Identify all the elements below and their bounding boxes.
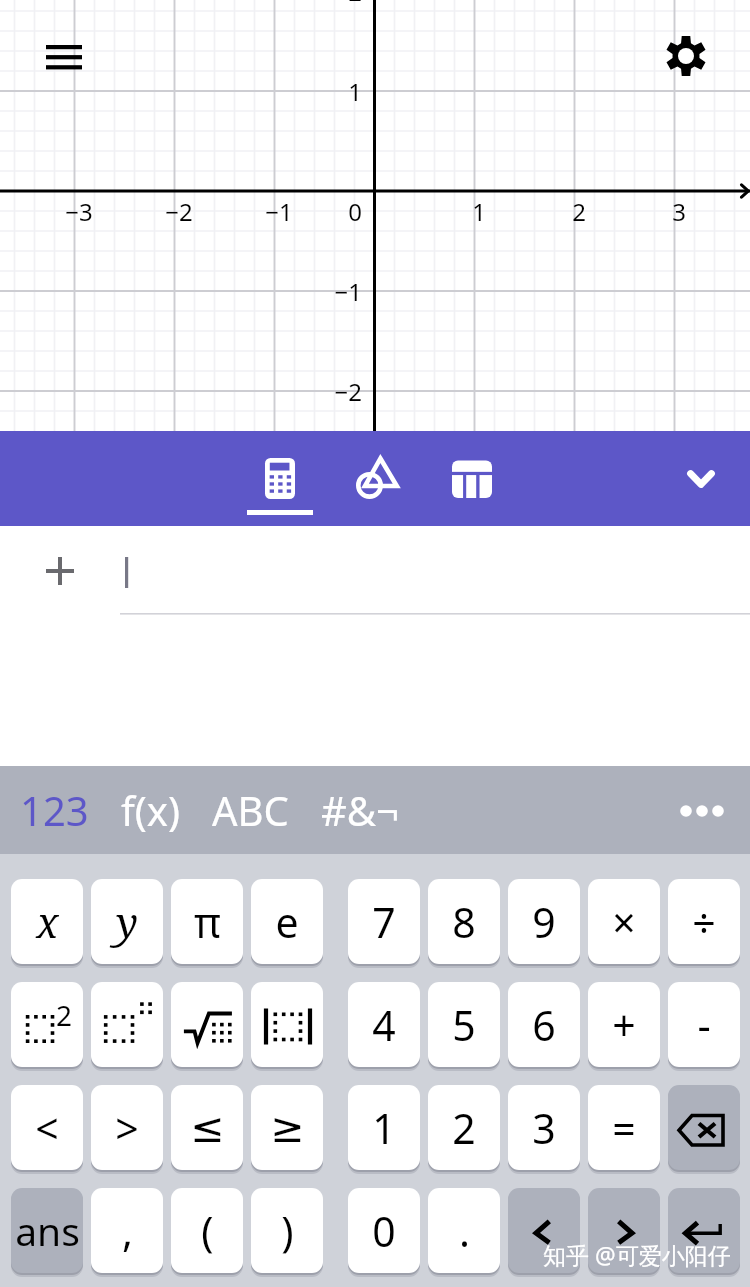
button[interactable]: Absolute value <box>251 982 323 1067</box>
staticText: = <box>612 1100 636 1156</box>
button[interactable]: 7 <box>348 879 420 964</box>
staticText: ( <box>201 1203 214 1259</box>
button[interactable]: Add expression <box>32 545 88 601</box>
button[interactable]: 4 <box>348 982 420 1067</box>
button[interactable]: f(x) <box>105 773 196 847</box>
button[interactable]: ≤ <box>171 1085 243 1170</box>
button[interactable]: Calculator <box>246 431 314 526</box>
button[interactable]: e <box>251 879 323 964</box>
staticText: −2 <box>129 195 229 228</box>
staticText: , <box>122 1203 133 1259</box>
button[interactable]: Move right <box>588 1188 660 1273</box>
button[interactable]: . <box>428 1188 500 1273</box>
button[interactable]: 8 <box>428 879 500 964</box>
button[interactable]: 1 <box>348 1085 420 1170</box>
button[interactable]: Settings <box>660 30 712 82</box>
staticText: 3 <box>532 1100 556 1156</box>
staticText: 2 <box>262 0 362 8</box>
button[interactable]: Square <box>11 982 83 1067</box>
staticText: #&¬ <box>321 783 399 837</box>
staticText: 5 <box>452 997 476 1053</box>
button[interactable]: 6 <box>508 982 580 1067</box>
button[interactable]: ) <box>251 1188 323 1273</box>
staticText: 1 <box>262 75 362 108</box>
staticText: ÷ <box>692 894 716 950</box>
button[interactable]: , <box>91 1188 163 1273</box>
button[interactable]: ÷ <box>668 879 740 964</box>
staticText: 知乎 @可爱小阳仔 <box>543 1239 731 1270</box>
staticText: 9 <box>532 894 556 950</box>
button[interactable]: 9 <box>508 879 580 964</box>
staticText: π <box>194 894 221 950</box>
button[interactable]: Move left <box>508 1188 580 1273</box>
staticText: ) <box>281 1203 294 1259</box>
staticText: −1 <box>229 195 329 228</box>
button[interactable]: ( <box>171 1188 243 1273</box>
button[interactable]: < <box>11 1085 83 1170</box>
staticText: - <box>697 997 711 1053</box>
staticText: ≥ <box>270 1104 305 1152</box>
button[interactable]: Table <box>438 431 506 526</box>
staticText: 0 <box>262 195 362 228</box>
staticText: −3 <box>29 195 129 228</box>
button[interactable]: Tools <box>342 431 410 526</box>
staticText: ans <box>15 1204 80 1257</box>
staticText: 2 <box>529 195 629 228</box>
button[interactable]: #&¬ <box>305 773 415 847</box>
button[interactable]: ≥ <box>251 1085 323 1170</box>
button[interactable]: x <box>11 879 83 964</box>
staticText: + <box>612 997 636 1053</box>
button[interactable]: > <box>91 1085 163 1170</box>
button[interactable]: 123 <box>4 773 105 847</box>
button[interactable]: = <box>588 1085 660 1170</box>
button[interactable]: - <box>668 982 740 1067</box>
button[interactable]: Backspace <box>668 1085 740 1170</box>
staticText: . <box>459 1203 470 1259</box>
staticText: x <box>36 894 59 950</box>
staticText: 6 <box>532 997 556 1053</box>
staticText: 2 <box>56 996 73 1034</box>
staticText: e <box>275 894 299 950</box>
staticText: y <box>116 894 138 950</box>
staticText: 4 <box>372 997 396 1053</box>
button[interactable]: 0 <box>348 1188 420 1273</box>
staticText: 1 <box>429 195 529 228</box>
staticText: 8 <box>452 894 476 950</box>
staticText: −2 <box>262 375 362 408</box>
button[interactable]: Enter <box>668 1188 740 1273</box>
staticText: ABC <box>212 783 289 837</box>
button[interactable]: π <box>171 879 243 964</box>
button[interactable]: More options <box>666 766 738 854</box>
staticText: 0 <box>372 1203 396 1259</box>
staticText: 1 <box>372 1100 396 1156</box>
staticText: > <box>115 1100 139 1156</box>
staticText: < <box>35 1100 59 1156</box>
staticText: 123 <box>20 783 89 837</box>
button[interactable]: Collapse keyboard <box>672 431 730 526</box>
staticText: −1 <box>262 275 362 308</box>
button[interactable]: ans <box>11 1188 83 1273</box>
staticText: ≤ <box>190 1104 225 1152</box>
button[interactable]: ABC <box>196 773 305 847</box>
button[interactable]: y <box>91 879 163 964</box>
staticText: 7 <box>372 894 396 950</box>
button[interactable]: 5 <box>428 982 500 1067</box>
button[interactable]: Menu <box>32 32 96 82</box>
button[interactable]: Exponent <box>91 982 163 1067</box>
button[interactable]: Square root <box>171 982 243 1067</box>
staticText: × <box>612 894 636 950</box>
staticText: f(x) <box>121 783 180 837</box>
button[interactable]: + <box>588 982 660 1067</box>
button[interactable]: × <box>588 879 660 964</box>
staticText: 3 <box>629 195 729 228</box>
button[interactable]: 3 <box>508 1085 580 1170</box>
button[interactable]: 2 <box>428 1085 500 1170</box>
staticText: 2 <box>452 1100 476 1156</box>
